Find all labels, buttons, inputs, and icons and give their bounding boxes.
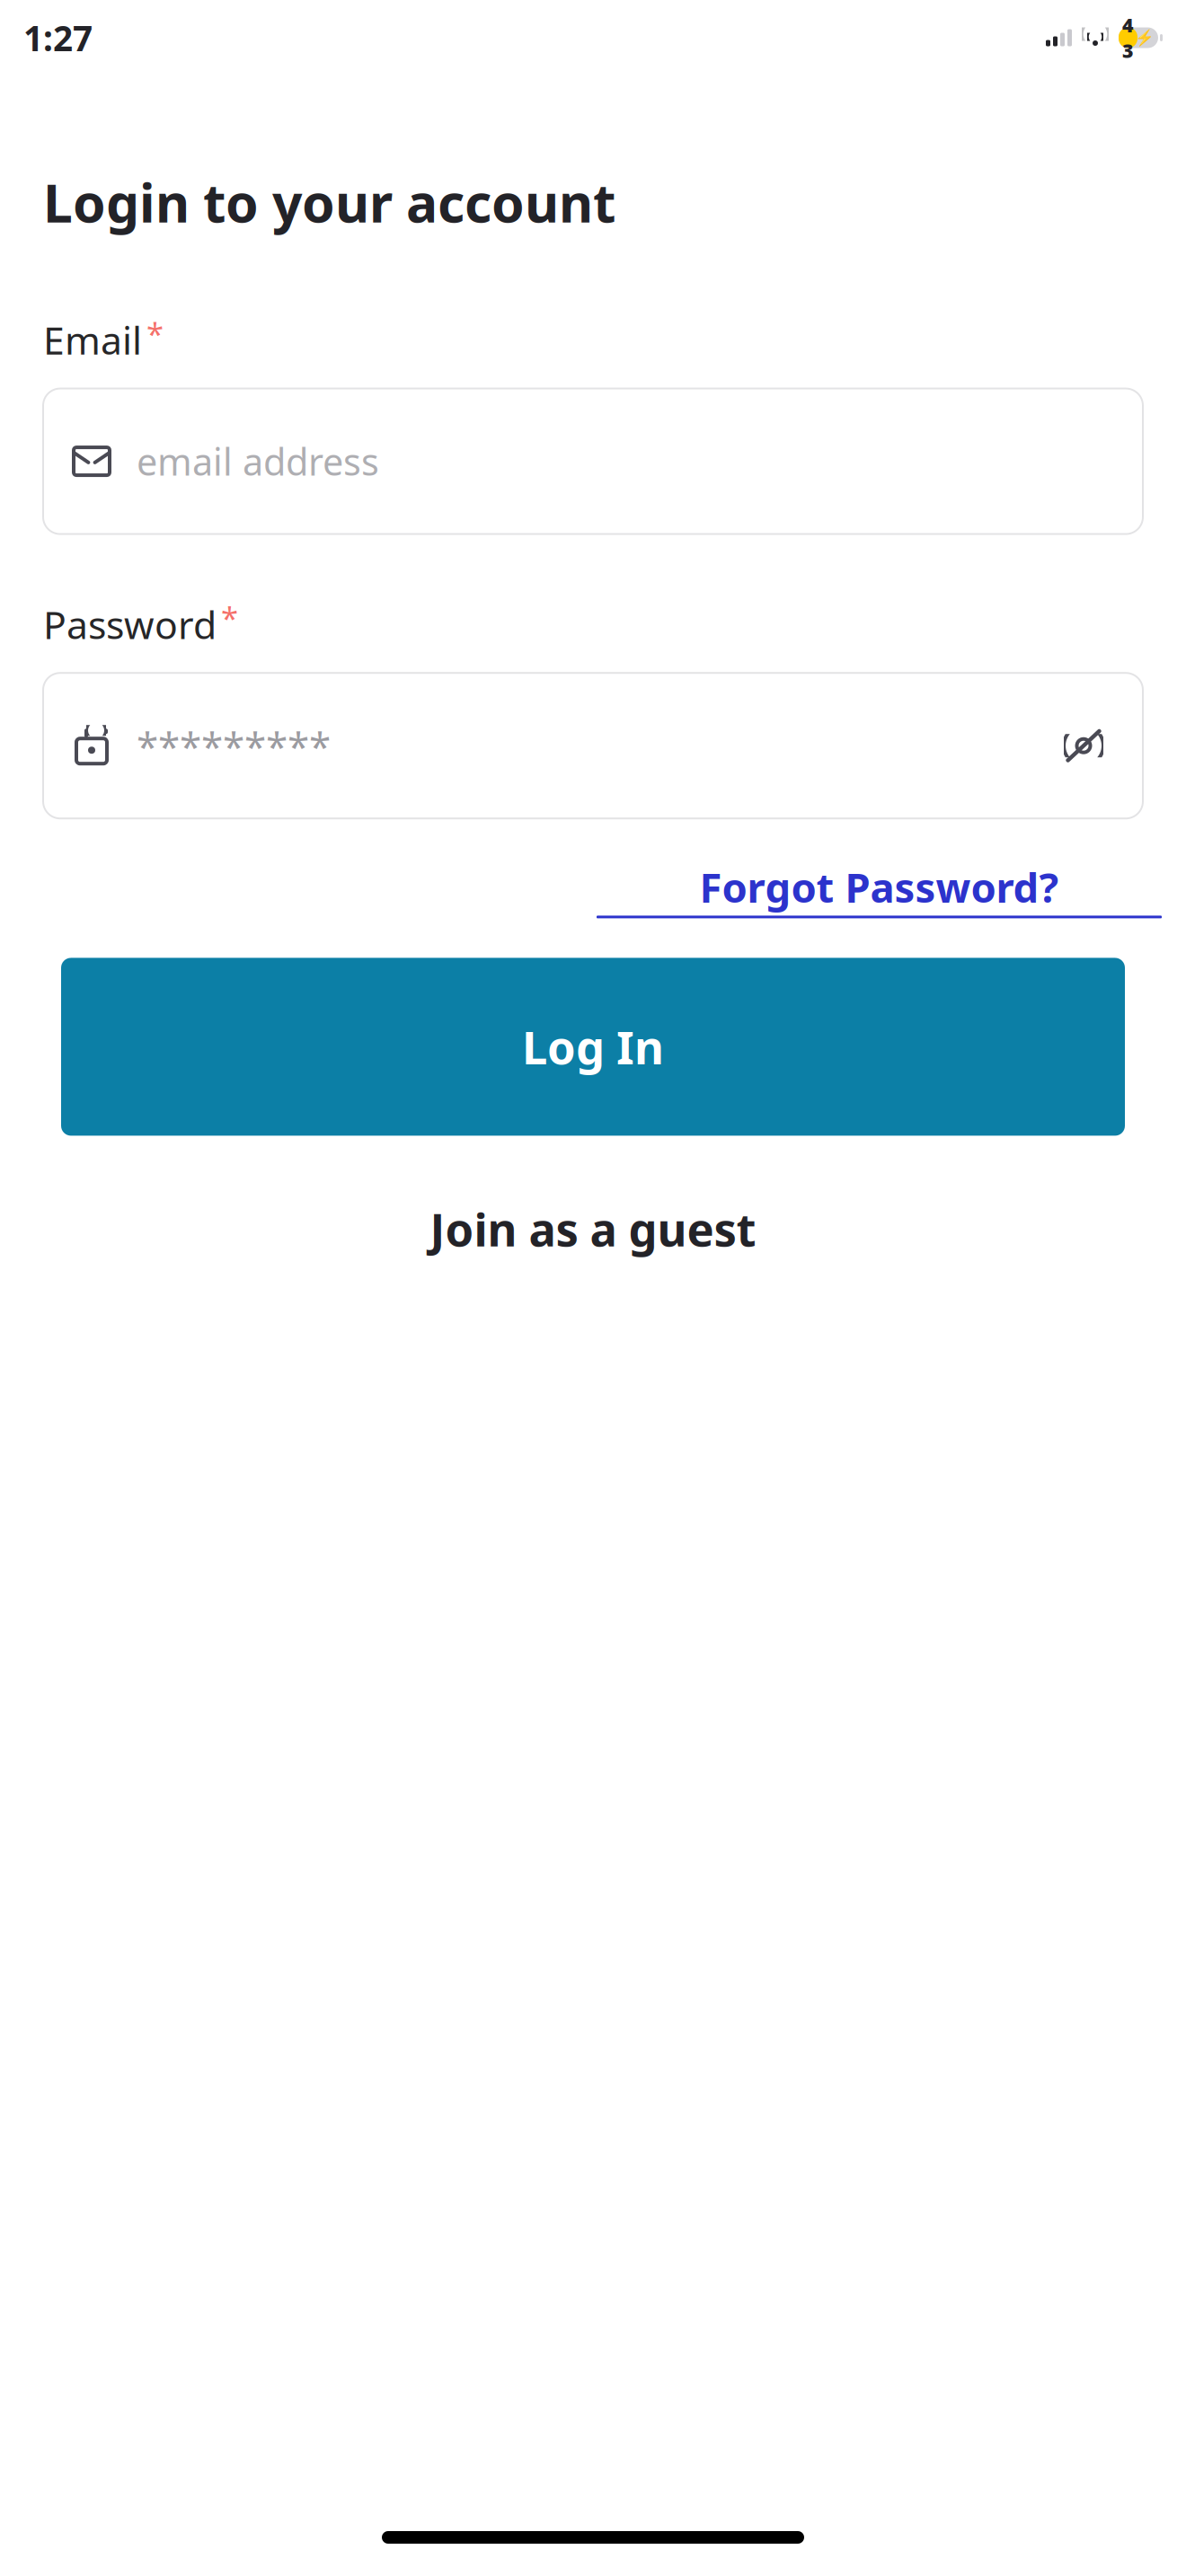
staticText: 1:27 xyxy=(23,15,93,61)
staticText: Join as a guest xyxy=(430,1199,756,1259)
staticText: 43 xyxy=(1122,12,1134,63)
staticText: ⚡ xyxy=(1135,29,1155,47)
staticText: Email xyxy=(43,314,142,365)
button[interactable]: Join as a guest xyxy=(43,1182,1143,1275)
staticText: email address xyxy=(137,437,379,486)
staticText: * xyxy=(221,597,238,638)
staticText: Forgot Password? xyxy=(699,860,1059,914)
staticText: Login to your account xyxy=(43,167,615,237)
staticText: * xyxy=(146,312,164,354)
button[interactable]: Forgot Password? xyxy=(597,854,1162,924)
staticText: ********* xyxy=(137,719,331,772)
button[interactable]: Show password xyxy=(1051,713,1116,778)
staticText: Password xyxy=(43,599,217,650)
button[interactable]: Log In xyxy=(61,958,1125,1136)
staticText: Log In xyxy=(522,1017,664,1077)
